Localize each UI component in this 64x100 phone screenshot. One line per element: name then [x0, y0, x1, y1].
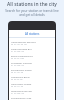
button[interactable]: Potsdamer Platz Bhf: [9, 61, 55, 68]
staticText: S3 S5 U1 U3: [11, 85, 24, 88]
staticText: All stations: [25, 32, 40, 36]
staticText: Ostbahnhof Berlin: [11, 76, 30, 79]
button[interactable]: Berlin Hauptbahnhof: [9, 54, 55, 61]
staticText: S3 S5 S7 U55: [11, 57, 24, 60]
staticText: Potsdamer Platz Bhf: [11, 62, 32, 65]
button[interactable]: Zoologischer Garten: [9, 68, 55, 75]
staticText: S5 S7 U2 U9: [11, 71, 24, 74]
staticText: Friedrichstrasse Bhf: [11, 48, 32, 51]
staticText: Gesundbrunnen Bhf: [11, 90, 32, 93]
staticText: S1 S2 S25 U8: [11, 92, 24, 95]
button[interactable]: Schoenhauser Allee: [9, 96, 55, 100]
staticText: S1 S2 S25 U2: [11, 64, 24, 67]
button[interactable]: Ostbahnhof Berlin: [9, 75, 55, 82]
button[interactable]: Friedrichstrasse Bhf: [9, 47, 55, 54]
staticText: S3 S5 S7 S9: [11, 78, 23, 81]
staticText: Search for your station or transit line …: [5, 9, 59, 17]
staticText: S5 S7 U2 U5 U8: [11, 43, 27, 46]
staticText: Warschauer Strasse: [11, 83, 32, 86]
staticText: S1 S2 S25 U6: [11, 50, 24, 53]
staticText: All stations in the city: [7, 1, 57, 8]
staticText: Berlin Hauptbahnhof: [11, 55, 33, 58]
staticText: Zoologischer Garten: [11, 69, 32, 72]
staticText: Schoenhauser Allee: [11, 97, 32, 100]
button[interactable]: Alexanderplatz Bahnhof: [9, 40, 55, 47]
button[interactable]: Warschauer Strasse: [9, 82, 55, 89]
button[interactable]: All stations: [9, 30, 55, 37]
button[interactable]: Gesundbrunnen Bhf: [9, 89, 55, 96]
staticText: Alexanderplatz Bahnhof: [11, 41, 36, 44]
